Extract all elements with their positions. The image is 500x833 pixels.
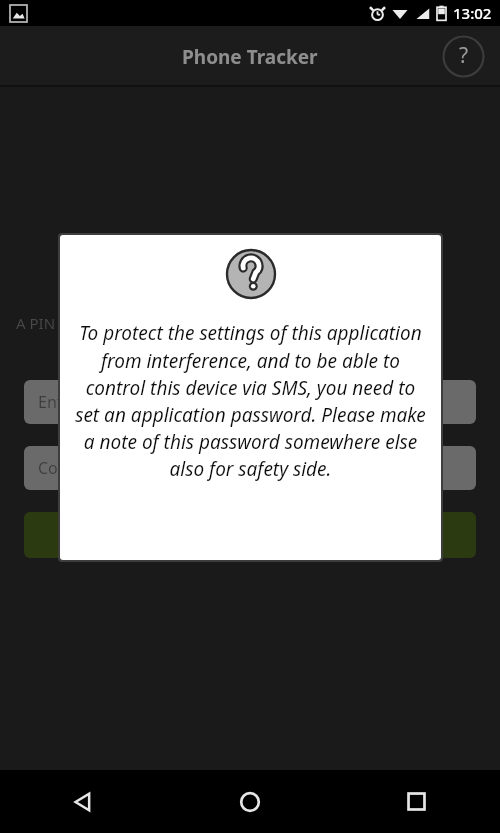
- staticText: A PIN is needed to protect the settings …: [16, 313, 334, 333]
- button[interactable]: Back: [0, 770, 166, 833]
- button[interactable]: Help: [442, 35, 485, 78]
- staticText: Phone Tracker: [182, 44, 318, 70]
- button[interactable]: Confirm password: [24, 446, 476, 490]
- staticText: ?: [459, 41, 469, 70]
- button[interactable]: Enter password: [24, 380, 476, 424]
- button[interactable]: [24, 512, 476, 558]
- button[interactable]: Home: [166, 770, 333, 833]
- staticText: Enter password: [38, 391, 155, 413]
- staticText: Confirm password: [38, 457, 176, 479]
- staticText: 13:02: [453, 3, 492, 23]
- staticText: To protect the settings of this applicat…: [74, 320, 427, 481]
- button[interactable]: Recent apps: [333, 770, 500, 833]
